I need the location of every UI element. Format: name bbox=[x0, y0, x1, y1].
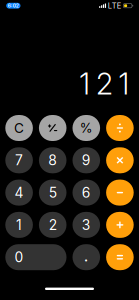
button[interactable]: 3 bbox=[72, 212, 100, 238]
button[interactable]: 8 bbox=[39, 147, 66, 173]
button[interactable]: divide bbox=[106, 115, 134, 141]
button[interactable]: 0 bbox=[5, 244, 66, 270]
button[interactable]: plus minus bbox=[39, 115, 66, 141]
staticText: 5 bbox=[49, 184, 57, 201]
button[interactable]: 5 bbox=[39, 180, 66, 206]
button[interactable]: 9 bbox=[72, 147, 100, 173]
staticText: 2 bbox=[49, 216, 57, 233]
staticText: 7 bbox=[15, 152, 23, 169]
staticText: 8 bbox=[48, 152, 57, 169]
staticText: 3 bbox=[82, 216, 91, 233]
staticText: 6:02 bbox=[8, 3, 19, 9]
button[interactable]: minus bbox=[106, 180, 134, 206]
button[interactable]: 2 bbox=[39, 212, 66, 238]
staticText: C bbox=[14, 120, 24, 136]
staticText: LTE bbox=[108, 1, 121, 10]
button[interactable]: 7 bbox=[5, 147, 33, 173]
staticText: 121 bbox=[79, 66, 129, 101]
staticText: 1 bbox=[16, 216, 22, 233]
button[interactable]: 1 bbox=[5, 212, 33, 238]
staticText: 4 bbox=[15, 184, 24, 201]
button[interactable]: % bbox=[72, 115, 100, 141]
button[interactable]: plus bbox=[106, 212, 134, 238]
staticText: 6 bbox=[82, 184, 91, 201]
button[interactable]: C bbox=[5, 115, 33, 141]
button[interactable]: equals bbox=[106, 244, 134, 270]
button[interactable]: . bbox=[72, 244, 100, 270]
button[interactable]: multiply bbox=[106, 147, 134, 173]
button[interactable]: 4 bbox=[5, 180, 33, 206]
staticText: 0 bbox=[15, 249, 24, 266]
staticText: 9 bbox=[82, 152, 91, 169]
button[interactable]: 6 bbox=[72, 180, 100, 206]
staticText: % bbox=[80, 120, 93, 136]
staticText: . bbox=[84, 246, 89, 265]
